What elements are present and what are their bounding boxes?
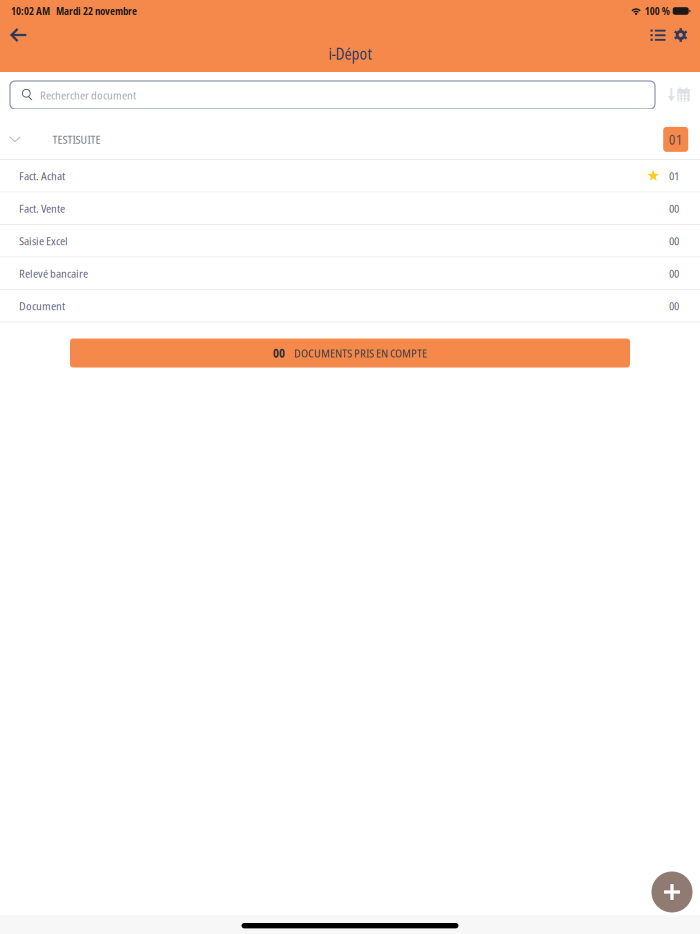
staticText: Document — [19, 298, 65, 313]
button[interactable]: Saisie Excel — [0, 225, 700, 257]
staticText: 01 — [669, 130, 683, 149]
button[interactable]: TESTISUITE — [0, 109, 700, 159]
staticText: 100 % — [645, 4, 670, 18]
button[interactable]: List view — [643, 20, 673, 50]
staticText: 00 — [669, 200, 679, 216]
staticText: Rechercher document — [40, 87, 136, 103]
staticText: 01 — [669, 168, 679, 183]
button[interactable]: Add document — [651, 871, 692, 912]
staticText: 00 — [669, 233, 679, 248]
staticText: i-Dépot — [328, 43, 371, 64]
staticText: Mardi 22 novembre — [56, 4, 137, 18]
button[interactable]: 00 — [70, 338, 630, 367]
button[interactable]: Settings — [666, 20, 696, 50]
staticText: 00 — [273, 345, 285, 361]
staticText: Relevé bancaire — [19, 265, 88, 281]
staticText: Fact. Vente — [19, 200, 65, 216]
staticText: DOCUMENTS PRIS EN COMPTE — [294, 345, 427, 361]
staticText: TESTISUITE — [52, 132, 100, 147]
staticText: Saisie Excel — [19, 233, 68, 248]
staticText: Fact. Achat — [19, 168, 65, 183]
staticText: 00 — [669, 265, 679, 281]
button[interactable]: Fact. Achat — [0, 160, 700, 192]
button[interactable]: Sort by date — [662, 81, 696, 109]
staticText: 00 — [669, 298, 679, 313]
button[interactable]: Document — [0, 290, 700, 322]
button[interactable]: Relevé bancaire — [0, 257, 700, 290]
button[interactable]: Fact. Vente — [0, 192, 700, 225]
staticText: 10:02 AM — [11, 4, 50, 18]
button[interactable]: Back — [0, 20, 36, 50]
button[interactable]: Rechercher document — [10, 81, 655, 109]
